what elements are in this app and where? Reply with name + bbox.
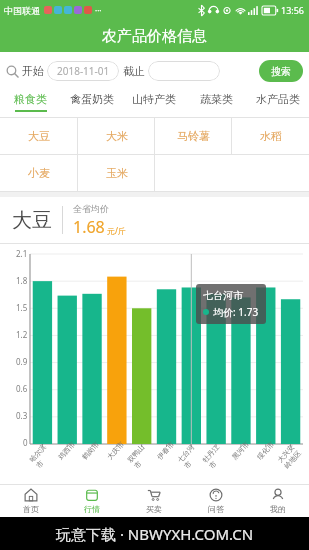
button[interactable] [148,61,220,81]
staticText: 山特产类 [132,92,176,106]
staticText: 0 [23,437,28,448]
staticText: 大豆 [28,129,50,143]
staticText: 水稻 [260,129,282,143]
button[interactable]: 玉米 [78,155,155,191]
staticText: 大豆 [12,208,52,233]
staticText: 大庆市 [105,440,126,461]
staticText: 牡丹江市 [200,440,230,470]
staticText: 我的 [270,504,286,514]
button[interactable]: 马铃薯 [155,118,232,154]
button[interactable]: 大豆 [0,118,78,154]
staticText: 0.3 [16,410,28,421]
staticText: 1.5 [16,302,28,313]
staticText: 蔬菜类 [200,92,233,106]
staticText: 双鸭山市 [125,440,155,470]
button[interactable]: 大米 [78,118,155,154]
staticText: 截止 [123,64,145,78]
button[interactable]: 山特产类 [123,90,185,117]
staticText: 0.9 [16,356,28,367]
button[interactable]: 粮食类 [0,90,61,117]
button[interactable]: 小麦 [0,155,78,191]
staticText: 行情 [84,504,100,514]
staticText: 元/斤 [107,225,126,236]
button[interactable]: 搜索 [259,60,303,82]
staticText: 玩意下载 · NBWYXH.COM.CN [56,524,254,544]
button[interactable]: 禽蛋奶类 [61,90,123,117]
staticText: 买卖 [146,504,162,514]
button[interactable]: 蔬菜类 [185,90,247,117]
staticText: 鹤岗市 [80,440,101,461]
staticText: 马铃薯 [177,129,210,143]
button[interactable]: 买卖 [123,485,185,517]
staticText: 开始 [22,64,44,78]
staticText: 禽蛋奶类 [70,92,114,106]
staticText: 2018-11-01 [57,64,110,78]
staticText: 伊春市 [155,440,176,461]
staticText: 大兴安岭地区 [275,440,305,470]
staticText: 黑河市 [230,440,251,461]
button[interactable]: 首页 [0,485,61,517]
staticText: 七台河市 [175,440,205,470]
staticText: 哈尔滨市 [27,440,57,470]
staticText: 大米 [106,129,128,143]
staticText: 中国联通 [4,5,40,16]
staticText: 全省均价 [73,203,109,214]
other: Search [6,65,19,78]
staticText: 1.8 [16,275,28,286]
staticText: 鸡西市 [56,440,77,461]
staticText: 粮食类 [14,92,47,106]
staticText: 1.2 [16,329,28,340]
staticText: 玉米 [106,166,128,180]
staticText: 13:56 [281,4,305,16]
button[interactable]: 我的 [247,485,309,517]
staticText: 水产品类 [256,92,300,106]
staticText: 2.1 [16,248,28,259]
staticText: 小麦 [28,166,50,180]
staticText: 搜索 [271,65,291,78]
staticText: 1.68 [73,216,105,238]
staticText: 0.6 [16,383,28,394]
staticText: 绥化市 [255,440,276,461]
button[interactable]: 问答 [185,485,247,517]
staticText: 首页 [23,504,39,514]
staticText: 七台河市 [203,289,243,302]
staticText: 农产品价格信息 [102,27,207,46]
button[interactable]: 水稻 [232,118,309,154]
button[interactable]: 水产品类 [247,90,309,117]
button[interactable]: 2018-11-01 [47,61,119,81]
staticText: 问答 [208,504,224,514]
staticText: ··· [95,5,102,16]
staticText: 均价: 1.73 [213,305,259,319]
button[interactable]: 行情 [61,485,123,517]
